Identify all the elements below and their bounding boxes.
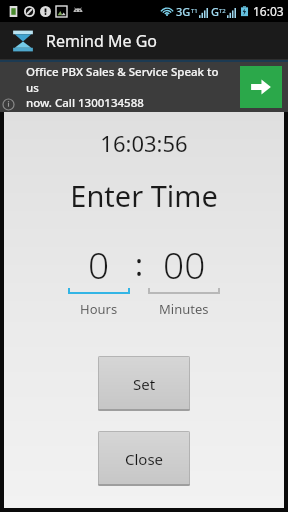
staticText: Set xyxy=(133,374,156,394)
staticText: : xyxy=(135,244,144,285)
staticText: Minutes xyxy=(159,300,209,318)
button[interactable]: Open advertisement xyxy=(240,66,282,108)
staticText: Enter Time xyxy=(70,176,218,215)
staticText: T2 xyxy=(219,7,226,15)
staticText: Office PBX Sales & Service Speak to us n… xyxy=(26,64,230,110)
staticText: Close xyxy=(125,449,164,469)
button[interactable]: Close xyxy=(98,431,190,486)
button[interactable]: Set xyxy=(98,356,190,411)
staticText: T1 xyxy=(191,7,198,15)
staticText: Hours xyxy=(80,300,118,318)
staticText: 0 xyxy=(88,239,110,289)
staticText: Remind Me Go xyxy=(46,30,157,52)
staticText: 00 xyxy=(163,239,206,289)
staticText: 16:03:56 xyxy=(100,128,188,158)
button[interactable]: 0 xyxy=(68,239,130,289)
staticText: 3G xyxy=(176,4,191,19)
button[interactable]: 00 xyxy=(148,239,220,289)
button[interactable]: Office PBX Sales & Service Speak to us n… xyxy=(0,62,288,112)
staticText: G xyxy=(211,4,219,19)
staticText: 16:03 xyxy=(253,3,284,19)
